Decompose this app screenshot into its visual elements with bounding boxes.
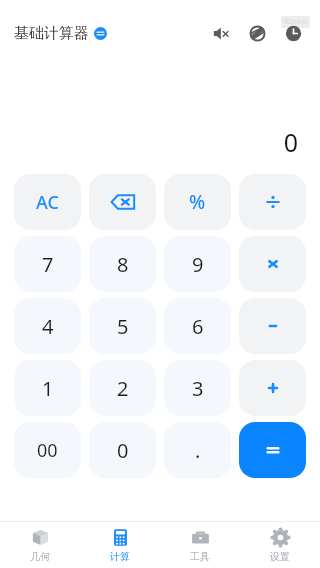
staticText: 0: [117, 437, 129, 464]
staticText: 基础计算器: [14, 24, 89, 43]
button[interactable]: 9: [164, 236, 231, 292]
button[interactable]: Mute: [208, 20, 234, 46]
staticText: 9: [192, 251, 204, 278]
button[interactable]: 6: [164, 298, 231, 354]
button[interactable]: [239, 174, 306, 230]
button[interactable]: 4: [14, 298, 81, 354]
button[interactable]: 设置: [240, 522, 320, 568]
staticText: 1: [42, 375, 54, 402]
staticText: 5: [117, 313, 129, 340]
button[interactable]: 工具: [160, 522, 240, 568]
button[interactable]: [239, 236, 306, 292]
button[interactable]: 8: [89, 236, 156, 292]
button[interactable]: 3: [164, 360, 231, 416]
button[interactable]: 几何: [0, 522, 80, 568]
staticText: 6: [192, 313, 204, 340]
button[interactable]: %: [164, 174, 231, 230]
staticText: .: [195, 437, 201, 464]
staticText: %: [189, 189, 206, 215]
staticText: 7: [42, 251, 54, 278]
staticText: 4: [42, 313, 54, 340]
button[interactable]: [239, 298, 306, 354]
button[interactable]: Switch calculator: [94, 27, 107, 40]
staticText: 0: [283, 125, 298, 159]
staticText: 2: [117, 375, 129, 402]
staticText: 00: [37, 438, 58, 463]
button[interactable]: [239, 422, 306, 478]
button[interactable]: Theme: [244, 20, 270, 46]
staticText: 3: [192, 375, 204, 402]
button[interactable]: AC: [14, 174, 81, 230]
staticText: 8: [117, 251, 129, 278]
button[interactable]: 2: [89, 360, 156, 416]
button[interactable]: [239, 360, 306, 416]
staticText: 计算: [110, 550, 130, 563]
staticText: 几何: [30, 550, 50, 563]
staticText: 设置: [270, 550, 290, 563]
button[interactable]: 7: [14, 236, 81, 292]
staticText: 工具: [190, 550, 210, 563]
button[interactable]: History: [280, 20, 306, 46]
button[interactable]: 1: [14, 360, 81, 416]
button[interactable]: 00: [14, 422, 81, 478]
button[interactable]: 0: [89, 422, 156, 478]
button[interactable]: .: [164, 422, 231, 478]
button[interactable]: 5: [89, 298, 156, 354]
button[interactable]: 计算: [80, 522, 160, 568]
button[interactable]: Backspace: [89, 174, 156, 230]
staticText: AC: [36, 190, 59, 215]
staticText: 92e4-0: [284, 17, 307, 27]
